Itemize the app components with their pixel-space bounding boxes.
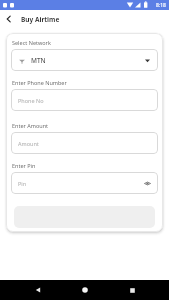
button[interactable] bbox=[122, 280, 142, 300]
staticText: Amount bbox=[18, 140, 39, 147]
button[interactable] bbox=[0, 10, 18, 28]
staticText: Select Network bbox=[12, 39, 51, 46]
staticText: Enter Phone Number bbox=[12, 79, 67, 86]
button[interactable]: Amount bbox=[11, 132, 158, 154]
button[interactable] bbox=[28, 280, 48, 300]
button[interactable]: Pin bbox=[11, 172, 158, 194]
staticText: Enter Amount bbox=[12, 122, 49, 129]
staticText: 8:18 bbox=[156, 2, 166, 9]
staticText: MTN bbox=[31, 56, 46, 65]
staticText: Pin bbox=[18, 180, 27, 187]
button[interactable]: Phone No bbox=[11, 89, 158, 111]
staticText: Buy Airtime bbox=[21, 15, 60, 24]
staticText: Enter Pin bbox=[12, 162, 36, 169]
button[interactable]: MTN bbox=[11, 49, 158, 71]
button[interactable] bbox=[75, 280, 95, 300]
staticText: Phone No bbox=[18, 97, 44, 104]
